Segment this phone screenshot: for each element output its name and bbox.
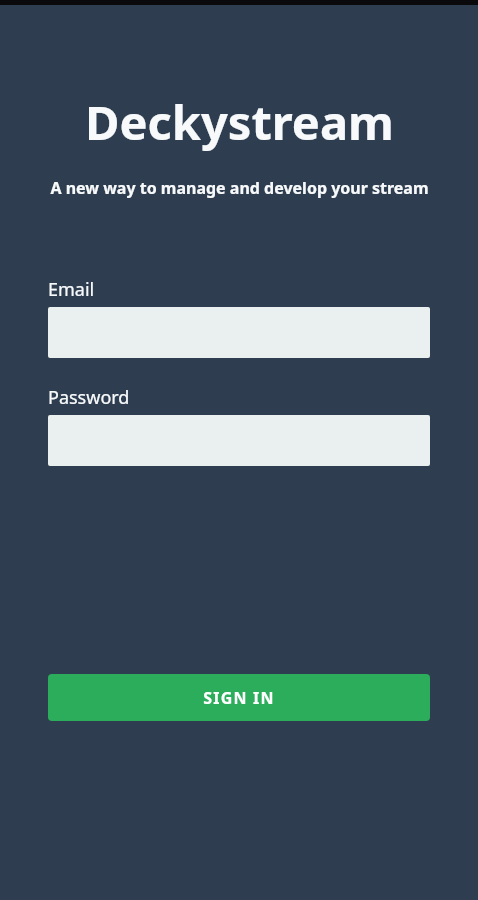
button[interactable]: SIGN IN	[48, 674, 430, 721]
staticText: Password	[48, 385, 130, 410]
staticText: Deckystream	[85, 90, 394, 154]
staticText: SIGN IN	[203, 687, 275, 709]
staticText: Email	[48, 277, 95, 302]
staticText: A new way to manage and develop your str…	[50, 177, 429, 199]
